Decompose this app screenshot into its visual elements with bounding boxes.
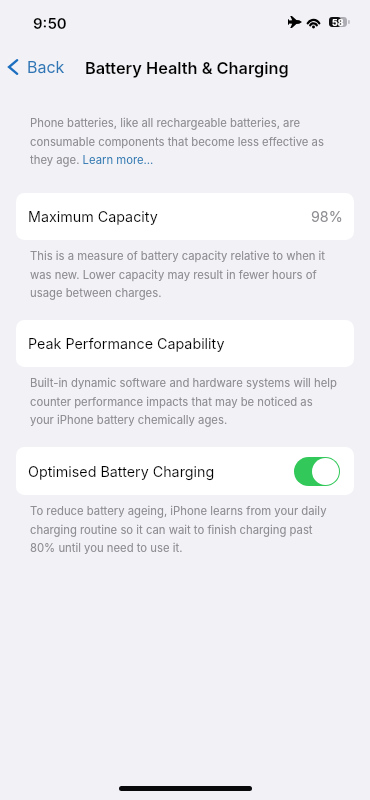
staticText: To reduce battery ageing, iPhone learns … [30, 504, 338, 554]
staticText: 58 [332, 17, 344, 27]
button[interactable]: Peak Performance Capability [16, 320, 354, 367]
button[interactable]: Maximum Capacity [16, 193, 354, 240]
staticText: 98% [311, 208, 343, 225]
staticText: 9:50 [33, 14, 67, 32]
button[interactable]: Back [0, 51, 73, 82]
button[interactable]: Optimised Battery Charging toggle, on [294, 457, 340, 486]
staticText: This is a measure of battery capacity re… [30, 249, 338, 299]
staticText: Battery Health & Charging [85, 58, 289, 78]
staticText: Peak Performance Capability [28, 335, 225, 352]
button[interactable]: Optimised Battery Charging [16, 447, 354, 495]
staticText: Built-in dynamic software and hardware s… [30, 376, 338, 426]
staticText: Optimised Battery Charging [28, 463, 215, 480]
staticText: Maximum Capacity [28, 208, 158, 225]
staticText: Phone batteries, like all rechargeable b… [30, 116, 338, 166]
staticText: Back [27, 57, 65, 76]
